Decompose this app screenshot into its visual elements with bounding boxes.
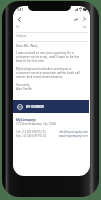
staticText: Subject — [16, 34, 27, 38]
staticText: MY COMPANY — [26, 105, 44, 109]
button[interactable]: To — [13, 24, 90, 30]
staticText: Dear Ms. West, — [16, 44, 39, 48]
staticText: I was excited to see your opening for a … — [16, 51, 86, 63]
button[interactable]: Subject — [13, 33, 90, 39]
staticText: My background includes serving as a cust… — [16, 67, 86, 79]
staticText: info@mycompany.com — [59, 130, 88, 134]
staticText: Sincerely, — [16, 83, 31, 87]
staticText: Cel: +12 345 678 912 33 — [16, 130, 46, 134]
staticText: Alex Smith — [16, 87, 32, 91]
button[interactable]: Send — [80, 15, 88, 23]
staticText: To — [16, 25, 20, 29]
staticText: 9:41 — [17, 8, 24, 11]
staticText: www.mycompany.com — [59, 134, 88, 138]
staticText: 123 Seventh Avenue, City 12345 — [16, 122, 57, 126]
button[interactable]: Back — [15, 15, 23, 23]
staticText: Fax: +12 345 678 912 33 — [16, 134, 47, 138]
button[interactable]: Attach file — [72, 15, 80, 23]
staticText: MyCompany — [16, 118, 36, 122]
